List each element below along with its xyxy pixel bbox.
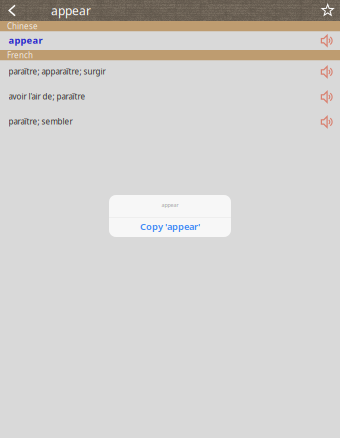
staticText: Chinese — [7, 21, 38, 31]
button[interactable]: Play pronunciation — [317, 59, 337, 86]
button[interactable]: paraître; apparaître; surgir — [0, 60, 340, 85]
staticText: appear — [8, 34, 42, 46]
staticText: Copy 'appear' — [140, 220, 200, 232]
staticText: paraître; apparaître; surgir — [8, 66, 105, 77]
button[interactable]: Back — [0, 0, 24, 21]
staticText: French — [7, 50, 33, 60]
staticText: appear — [51, 2, 91, 18]
button[interactable]: avoir l'air de; paraître — [0, 85, 340, 110]
button[interactable]: appear — [0, 31, 340, 50]
button[interactable]: paraître; sembler — [0, 110, 340, 135]
staticText: paraître; sembler — [8, 116, 72, 127]
button[interactable]: Play pronunciation — [317, 31, 337, 50]
staticText: appear — [161, 201, 178, 209]
button[interactable]: Add to favorites — [316, 0, 340, 21]
button[interactable]: Play pronunciation — [317, 84, 337, 111]
button[interactable]: Play pronunciation — [317, 109, 337, 136]
staticText: avoir l'air de; paraître — [8, 91, 85, 102]
button[interactable]: Copy 'appear' — [109, 218, 231, 237]
